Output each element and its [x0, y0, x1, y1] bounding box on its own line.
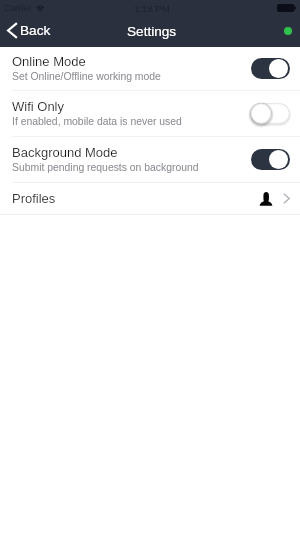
button[interactable]: Back — [0, 22, 59, 39]
staticText: Background Mode — [12, 145, 118, 160]
button[interactable]: Profiles — [0, 183, 300, 214]
staticText: Wifi Only — [12, 99, 64, 114]
button[interactable]: Switch on — [251, 58, 290, 79]
button[interactable]: Online Mode — [0, 47, 300, 90]
button[interactable]: Switch on — [251, 149, 290, 170]
staticText: Carrier — [4, 3, 32, 13]
button[interactable]: Background Mode — [0, 137, 300, 182]
staticText: Profiles — [12, 191, 258, 206]
staticText: Settings — [127, 24, 177, 39]
staticText: Set Online/Offline working mode — [12, 71, 161, 83]
staticText: Submit pending requests on background — [12, 162, 199, 174]
button[interactable]: Wifi Only — [0, 91, 300, 136]
staticText: If enabled, mobile data is never used — [12, 116, 182, 128]
button[interactable]: Switch off — [249, 101, 292, 126]
staticText: Online Mode — [12, 54, 86, 69]
staticText: Back — [20, 23, 51, 38]
staticText: 1:18 PM — [134, 3, 170, 14]
button[interactable]: Online status indicator — [284, 27, 292, 35]
